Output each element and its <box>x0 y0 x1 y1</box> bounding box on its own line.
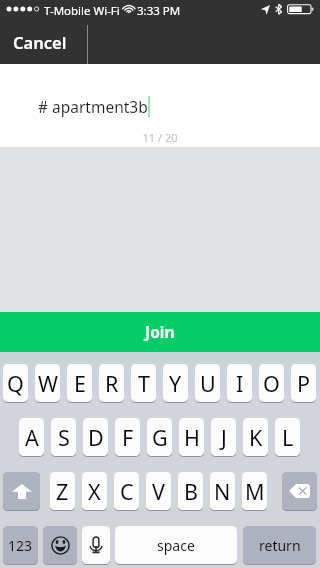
button[interactable]: J <box>211 418 236 456</box>
button[interactable]: S <box>51 418 76 456</box>
staticText: L <box>282 423 294 452</box>
staticText: B <box>184 477 198 506</box>
button[interactable]: X <box>82 472 107 510</box>
staticText: X <box>88 477 101 506</box>
button[interactable]: Shift <box>3 472 40 510</box>
button[interactable]: G <box>147 418 172 456</box>
button[interactable]: M <box>242 472 267 510</box>
button[interactable]: space <box>115 526 237 564</box>
button[interactable]: Join <box>0 312 320 352</box>
button[interactable]: 123 <box>3 526 38 564</box>
button[interactable]: Q <box>3 364 28 402</box>
staticText: G <box>152 423 168 452</box>
button[interactable]: H <box>179 418 204 456</box>
staticText: M <box>245 477 265 506</box>
staticText: return <box>259 536 301 555</box>
staticText: # apartment3b <box>38 96 148 117</box>
staticText: 11 / 20 <box>0 130 320 145</box>
button[interactable]: Dictation <box>82 526 110 564</box>
button[interactable]: Z <box>50 472 75 510</box>
button[interactable]: B <box>178 472 203 510</box>
staticText: W <box>38 369 58 398</box>
button[interactable]: L <box>275 418 300 456</box>
button[interactable]: U <box>195 364 220 402</box>
button[interactable]: I <box>227 364 252 402</box>
button[interactable]: R <box>99 364 124 402</box>
staticText: F <box>122 423 134 452</box>
button[interactable]: A <box>19 418 44 456</box>
staticText: 123 <box>8 536 33 555</box>
staticText: Q <box>7 369 24 398</box>
button[interactable]: Y <box>163 364 188 402</box>
staticText: H <box>184 423 200 452</box>
staticText: Join <box>145 321 175 342</box>
staticText: E <box>74 369 86 398</box>
button[interactable]: P <box>291 364 316 402</box>
staticText: S <box>58 423 70 452</box>
button[interactable]: F <box>115 418 140 456</box>
button[interactable]: C <box>114 472 139 510</box>
button[interactable]: Cancel <box>0 20 86 64</box>
button[interactable]: O <box>259 364 284 402</box>
button[interactable]: Emoji keyboard <box>43 526 77 564</box>
staticText: C <box>120 477 134 506</box>
staticText: Cancel <box>13 31 67 53</box>
staticText: T-Mobile Wi-Fi <box>44 3 120 19</box>
button[interactable]: D <box>83 418 108 456</box>
staticText: I <box>236 369 244 398</box>
staticText: N <box>214 477 231 506</box>
button[interactable]: E <box>67 364 92 402</box>
staticText: T <box>138 369 150 398</box>
staticText: O <box>263 369 280 398</box>
button[interactable]: W <box>35 364 60 402</box>
staticText: K <box>249 423 263 452</box>
staticText: R <box>105 369 119 398</box>
staticText: J <box>221 423 227 452</box>
button[interactable]: N <box>210 472 235 510</box>
staticText: V <box>152 477 165 506</box>
button[interactable]: K <box>243 418 268 456</box>
button[interactable]: T <box>131 364 156 402</box>
staticText: D <box>88 423 104 452</box>
button[interactable]: V <box>146 472 171 510</box>
staticText: U <box>200 369 216 398</box>
button[interactable]: Backspace <box>282 472 317 510</box>
staticText: Y <box>169 369 182 398</box>
staticText: 3:33 PM <box>137 3 181 19</box>
staticText: space <box>157 536 195 555</box>
staticText: P <box>297 369 311 398</box>
staticText: Z <box>56 477 69 506</box>
staticText: A <box>25 423 39 452</box>
button[interactable]: return <box>243 526 316 564</box>
